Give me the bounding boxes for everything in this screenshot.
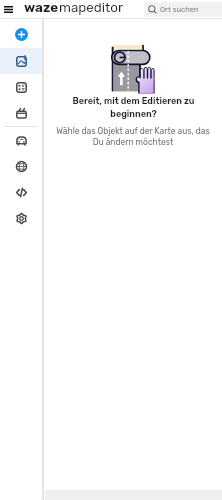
button[interactable]: Settings [0,205,42,231]
button[interactable]: Map editor [0,48,42,74]
staticText: Wähle das Objekt auf der Karte aus, das … [54,126,212,148]
staticText: waze [24,0,59,15]
button[interactable]: Community [0,153,42,179]
button[interactable]: Ort suchen [144,2,222,17]
staticText: mapeditor [59,0,123,15]
button[interactable]: Add new [0,27,42,41]
button[interactable]: Toolbox [0,100,42,126]
button[interactable]: Scripts [0,179,42,205]
button[interactable]: Dashboard [0,74,42,100]
button[interactable]: Drives [0,127,42,153]
staticText: Bereit, mit dem Editieren zu beginnen? [66,96,201,119]
button[interactable]: Menu [0,0,16,19]
staticText: Ort suchen [160,5,199,14]
